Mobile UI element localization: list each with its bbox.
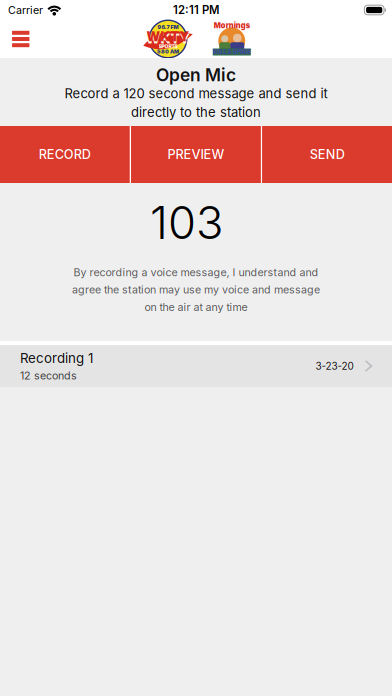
staticText: 3-23-20	[315, 360, 353, 372]
staticText: 103	[150, 195, 223, 250]
button[interactable]: RECORD	[0, 126, 130, 183]
staticText: SEND	[310, 147, 345, 162]
staticText: Open Mic	[156, 64, 236, 85]
button[interactable]: SEND	[262, 126, 392, 183]
staticText: on the air at any time	[144, 301, 247, 314]
staticText: agree the station may use my voice and m…	[72, 283, 320, 296]
staticText: Carrier	[8, 3, 43, 16]
staticText: SPORTS	[158, 43, 177, 49]
staticText: PREVIEW	[167, 147, 224, 162]
staticText: BULL & SPADE	[213, 49, 251, 55]
staticText: Record a 120 second message and send it	[64, 85, 327, 101]
button[interactable]: Menu	[0, 21, 41, 56]
staticText: 12:11 PM	[173, 3, 219, 17]
staticText: Mornings	[214, 21, 250, 30]
staticText: By recording a voice message, I understa…	[73, 266, 318, 279]
staticText: WKTY	[145, 30, 190, 47]
button[interactable]: Recording 1	[0, 345, 392, 387]
staticText: RECORD	[39, 147, 91, 162]
staticText: WKTY	[146, 29, 189, 44]
staticText: directly to the station	[131, 104, 261, 120]
staticText: 96.7 FM	[157, 24, 178, 30]
staticText: 580 AM	[157, 48, 179, 55]
button[interactable]: PREVIEW	[131, 126, 261, 183]
staticText: 12 seconds	[20, 369, 77, 382]
staticText: Recording 1	[20, 350, 93, 366]
